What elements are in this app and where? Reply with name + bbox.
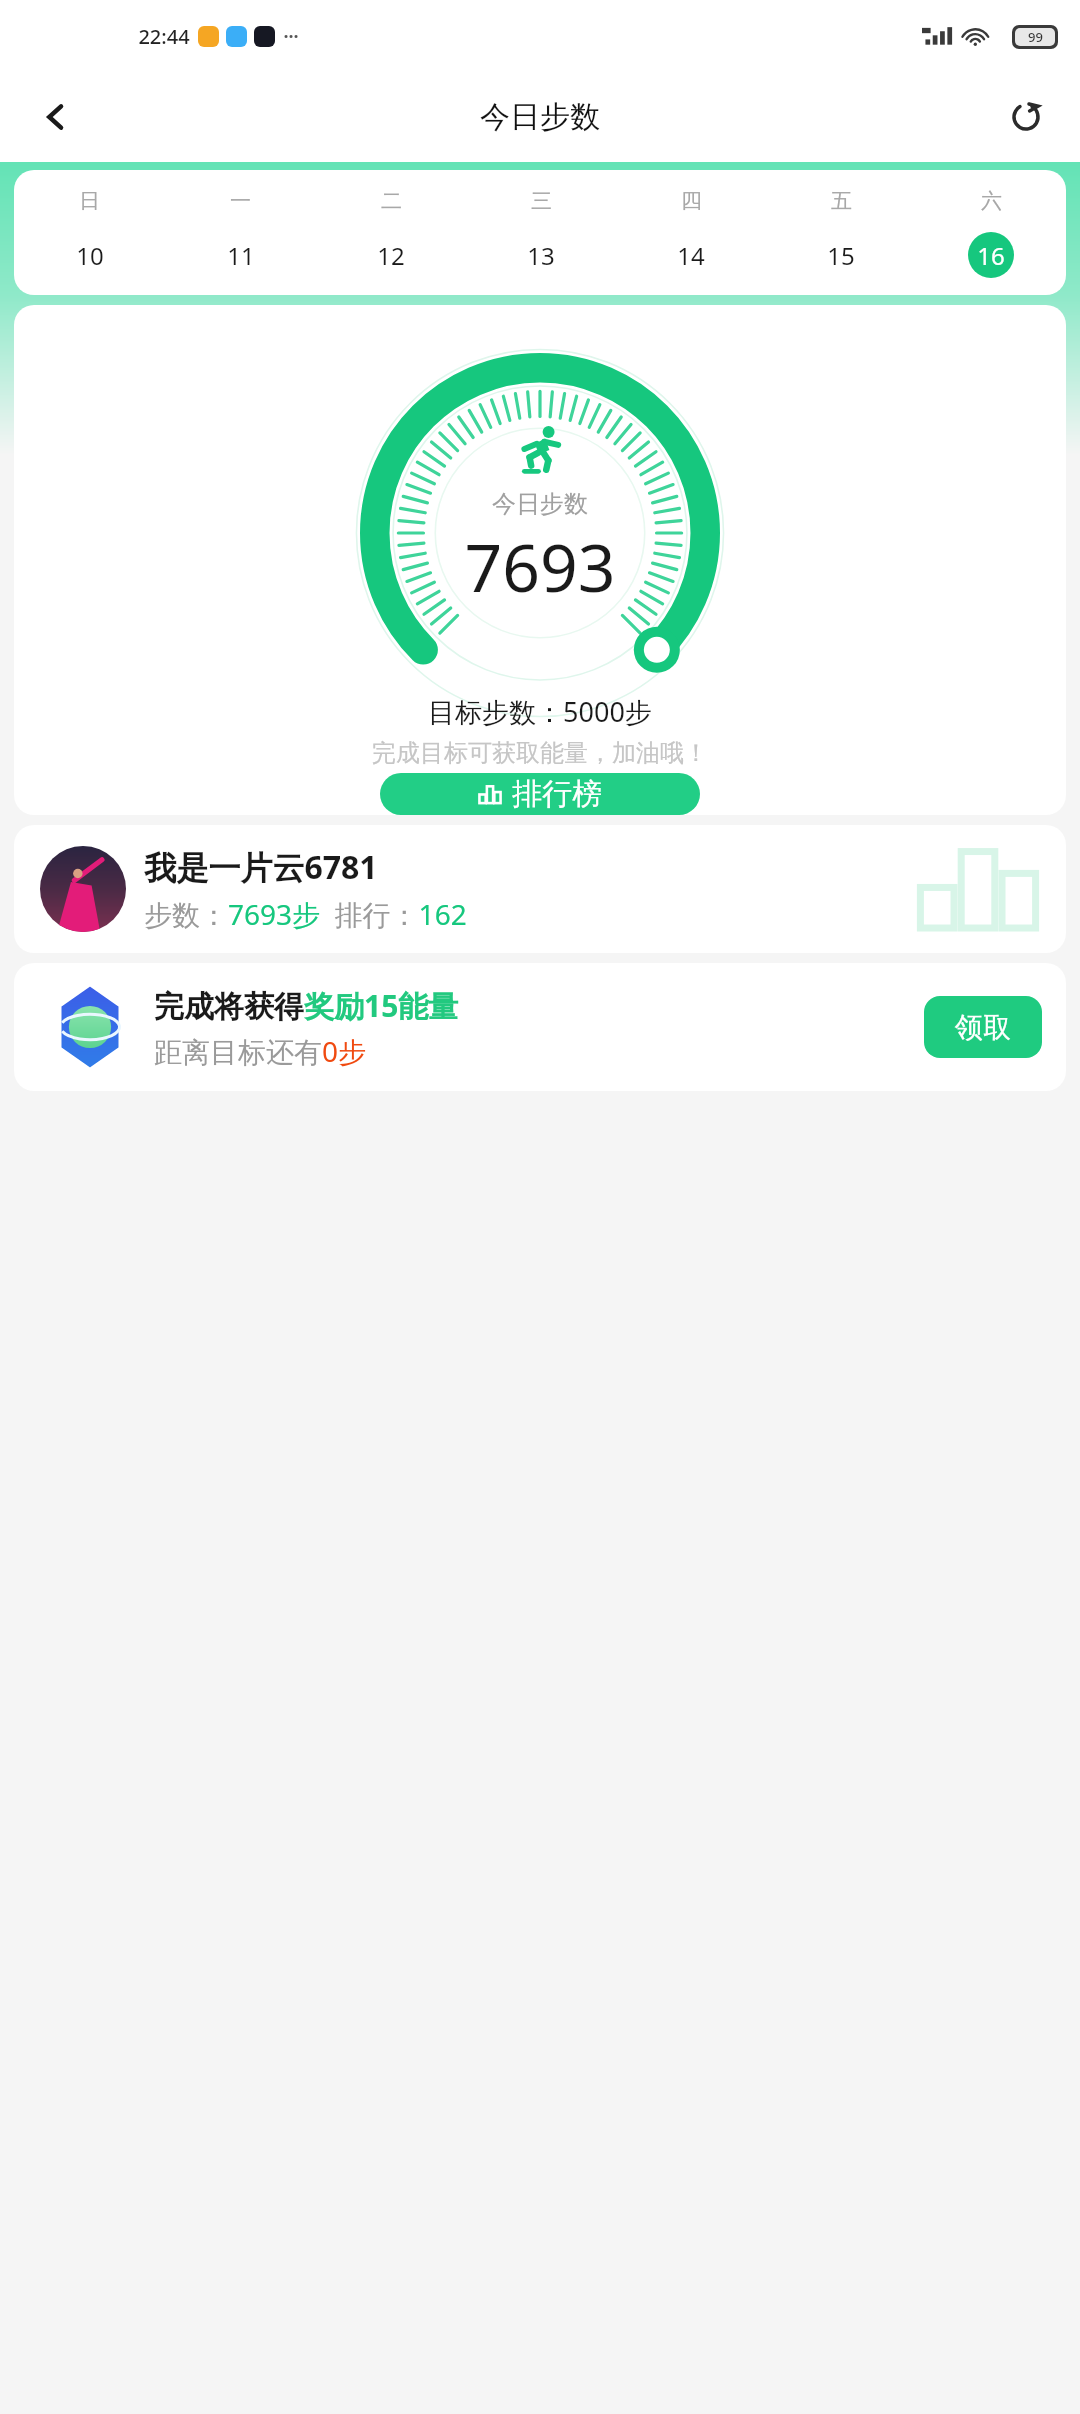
staticText: 22:44 xyxy=(138,23,190,50)
staticText: 14 xyxy=(677,239,705,272)
staticText: 10 xyxy=(76,239,104,272)
button[interactable]: 12 xyxy=(368,232,414,278)
staticText: ··· xyxy=(283,24,299,49)
staticText: 日 xyxy=(79,188,100,214)
button[interactable]: 15 xyxy=(818,232,864,278)
button[interactable]: 11 xyxy=(218,232,264,278)
staticText: 今日步数 xyxy=(480,98,600,136)
staticText: 距离目标还有0步 xyxy=(154,1032,367,1070)
button[interactable]: 排行榜 xyxy=(380,773,700,815)
button[interactable]: Refresh xyxy=(998,89,1054,145)
button[interactable]: 16 xyxy=(968,232,1014,278)
staticText: 99 xyxy=(1028,28,1043,46)
staticText: 领取 xyxy=(955,1010,1011,1045)
button[interactable]: 我是一片云6781 xyxy=(14,825,1066,953)
staticText: 完成目标可获取能量，加油哦！ xyxy=(372,738,708,768)
button[interactable]: 10 xyxy=(67,232,113,278)
staticText: 排行榜 xyxy=(512,775,602,813)
button[interactable]: 14 xyxy=(668,232,714,278)
staticText: 16 xyxy=(977,239,1005,272)
staticText: 13 xyxy=(527,239,555,272)
staticText: 六 xyxy=(981,188,1002,214)
button[interactable]: Back xyxy=(28,89,84,145)
staticText: 今日步数 xyxy=(492,489,588,519)
staticText: 我是一片云6781 xyxy=(144,845,378,889)
staticText: 三 xyxy=(531,188,552,214)
button[interactable]: 领取 xyxy=(924,996,1042,1058)
staticText: 五 xyxy=(831,188,852,214)
staticText: 二 xyxy=(381,188,402,214)
staticText: 12 xyxy=(377,239,405,272)
staticText: 11 xyxy=(227,239,255,272)
staticText: 7693 xyxy=(464,521,616,611)
staticText: 四 xyxy=(681,188,702,214)
staticText: 一 xyxy=(230,188,251,214)
button[interactable]: 13 xyxy=(518,232,564,278)
staticText: 完成将获得奖励15能量 xyxy=(154,985,459,1026)
staticText: 步数：7693步 排行：162 xyxy=(144,895,467,933)
staticText: 15 xyxy=(827,239,855,272)
staticText: 目标步数：5000步 xyxy=(428,693,652,730)
